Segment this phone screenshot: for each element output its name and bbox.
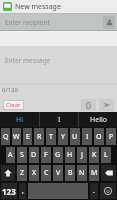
staticText: L [104,150,108,160]
button[interactable]: H [65,147,75,163]
button[interactable]: W [12,128,21,145]
staticText: . [93,186,95,196]
staticText: Z [20,168,25,178]
button[interactable]: Shift [1,165,15,181]
button[interactable]: . [90,183,98,199]
staticText: F [44,150,48,160]
button[interactable]: Y [58,128,68,145]
button[interactable]: M [89,165,99,181]
staticText: B [68,168,73,178]
staticText: E [26,132,30,142]
button[interactable]: 123 [1,183,17,199]
staticText: P [109,132,114,142]
staticText: I [86,132,89,142]
staticText: U [72,132,78,142]
staticText: N [79,168,85,178]
staticText: I [58,115,61,125]
staticText: , [22,186,24,196]
button[interactable]: Pick contact [103,16,115,29]
button[interactable]: Emoji [100,183,116,199]
button[interactable]: N [77,165,87,181]
button[interactable]: D [29,147,39,163]
staticText: Hello [90,115,107,125]
button[interactable]: I [40,112,78,127]
staticText: 123 [2,186,16,197]
button[interactable]: B [65,165,75,181]
staticText: K [92,150,97,160]
button[interactable]: New message [0,0,117,13]
button[interactable]: Hi [0,112,39,127]
staticText: D [31,150,37,160]
staticText: New message [15,2,61,12]
button[interactable]: I [82,128,92,145]
staticText: G [55,150,61,160]
staticText: C [44,168,49,178]
button[interactable]: U [70,128,80,145]
staticText: Y [61,132,65,142]
button[interactable]: S [17,147,27,163]
staticText: S [20,150,24,160]
staticText: Q [3,132,9,142]
button[interactable]: K [89,147,99,163]
button[interactable]: Send [99,99,114,111]
button[interactable]: E [23,128,32,145]
button[interactable]: V [53,165,63,181]
staticText: H [67,150,73,160]
button[interactable]: Enter recipient [0,14,103,30]
staticText: Hi [16,115,23,125]
staticText: Clear [6,101,21,109]
button[interactable]: Backspace [101,165,116,181]
button[interactable]: A [6,147,15,163]
button[interactable]: G [53,147,63,163]
button[interactable]: L [101,147,111,163]
button[interactable]: J [77,147,87,163]
staticText: R [37,132,42,142]
button[interactable]: Z [17,165,27,181]
button[interactable]: R [34,128,44,145]
staticText: J [81,150,83,160]
button[interactable]: O [94,128,104,145]
staticText: A [8,150,13,160]
button[interactable]: F [41,147,51,163]
button[interactable]: Clear [3,100,24,110]
staticText: W [13,132,20,142]
staticText: Enter message [5,56,51,65]
button[interactable]: X [29,165,39,181]
button[interactable]: Q [1,128,10,145]
button[interactable]: Attach [81,99,96,111]
button[interactable]: T [46,128,56,145]
staticText: Enter recipient [5,18,50,27]
button[interactable]: Hello [79,112,117,127]
button[interactable]: Enter message [0,46,117,84]
staticText: T [49,132,53,142]
staticText: V [56,168,61,178]
staticText: 0/120 [2,86,18,94]
button[interactable]: P [106,128,116,145]
staticText: X [32,168,37,178]
button[interactable]: C [41,165,51,181]
staticText: M [91,168,98,178]
staticText: O [96,132,102,142]
button[interactable]: , [19,183,26,199]
